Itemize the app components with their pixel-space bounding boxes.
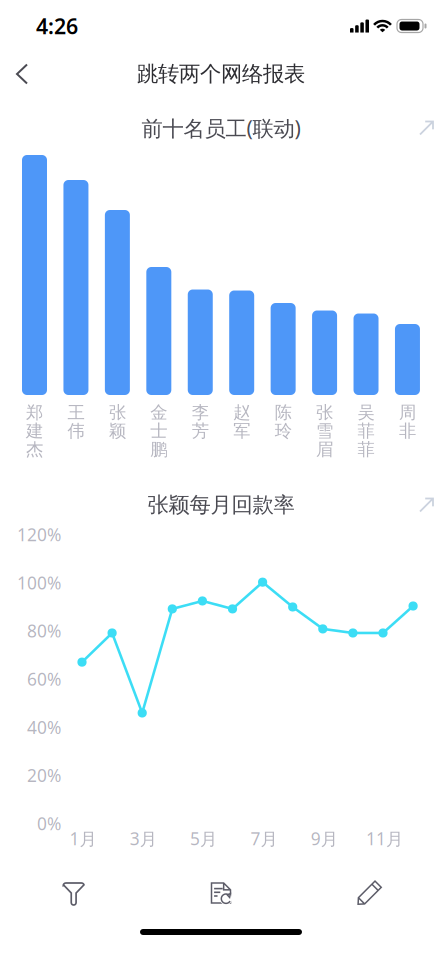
staticText: 鹏 [150, 439, 167, 460]
staticText: 陈 [275, 402, 292, 423]
button[interactable]: 刷新报表 [147, 883, 295, 905]
staticText: 金 [150, 402, 167, 423]
staticText: 王 [67, 402, 84, 423]
staticText: 玲 [275, 420, 292, 442]
staticText: 40% [27, 716, 61, 739]
staticText: 芳 [192, 420, 209, 442]
staticText: 11月 [366, 827, 403, 850]
staticText: 颖 [109, 420, 126, 442]
staticText: 张 [109, 402, 126, 423]
staticText: 20% [27, 764, 61, 787]
staticText: 军 [233, 420, 250, 442]
staticText: 菲 [357, 439, 374, 460]
staticText: 士 [150, 420, 167, 442]
staticText: 9月 [311, 827, 338, 850]
staticText: 跳转两个网络报表 [137, 61, 305, 87]
staticText: 伟 [67, 420, 84, 442]
staticText: 100% [17, 571, 61, 594]
staticText: 0% [37, 812, 61, 835]
button[interactable]: 全屏显示前十名员工 [411, 112, 442, 143]
staticText: 眉 [316, 439, 333, 460]
staticText: 3月 [130, 827, 157, 850]
staticText: 4:26 [36, 12, 78, 40]
button[interactable]: 全屏显示张颖每月回款率 [411, 489, 442, 520]
staticText: 建 [26, 420, 43, 442]
button[interactable]: 筛选 [0, 883, 147, 905]
staticText: 赵 [233, 402, 250, 423]
staticText: 菲 [357, 420, 374, 442]
staticText: 杰 [26, 439, 43, 460]
button[interactable]: 编辑 [295, 883, 442, 905]
button[interactable]: 返回 [0, 50, 44, 97]
staticText: 周 [399, 402, 416, 423]
staticText: 李 [192, 402, 209, 423]
staticText: 120% [17, 523, 61, 546]
staticText: 7月 [250, 827, 277, 850]
staticText: 雪 [316, 420, 333, 442]
staticText: 60% [27, 667, 61, 690]
staticText: 张 [316, 402, 333, 423]
staticText: 80% [27, 619, 61, 642]
staticText: 1月 [69, 827, 96, 850]
staticText: 吴 [357, 402, 374, 423]
staticText: 郑 [26, 402, 43, 423]
staticText: 张颖每月回款率 [147, 492, 294, 518]
staticText: 5月 [190, 827, 217, 850]
staticText: 非 [399, 420, 416, 442]
staticText: 前十名员工(联动) [141, 114, 300, 142]
